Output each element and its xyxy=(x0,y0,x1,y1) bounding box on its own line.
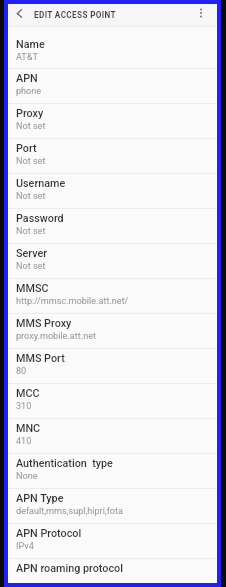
button[interactable]: APN roaming protocol xyxy=(8,559,217,583)
staticText: EDIT ACCESS POINT xyxy=(34,10,116,20)
staticText: Password xyxy=(16,212,64,225)
staticText: IPv4 xyxy=(16,541,34,552)
staticText: Not set xyxy=(16,191,46,202)
staticText: Username xyxy=(16,177,66,190)
button[interactable]: Navigate up xyxy=(8,4,31,22)
button[interactable]: MMS Port xyxy=(8,349,217,384)
staticText: Authentication type xyxy=(16,457,113,470)
button[interactable]: Port xyxy=(8,139,217,174)
staticText: http://mmsc.mobile.att.net/ xyxy=(16,296,129,307)
staticText: Not set xyxy=(16,156,46,167)
button[interactable]: Authentication type xyxy=(8,454,217,489)
staticText: Not set xyxy=(16,261,46,272)
button[interactable]: Username xyxy=(8,174,217,209)
staticText: default,mms,supl,hipri,fota xyxy=(16,506,123,517)
staticText: Port xyxy=(16,142,37,155)
staticText: MNC xyxy=(16,422,41,435)
staticText: Server xyxy=(16,247,48,260)
button[interactable]: MNC xyxy=(8,419,217,454)
button[interactable]: APN Type xyxy=(8,489,217,524)
staticText: MMSC xyxy=(16,282,49,295)
staticText: Proxy xyxy=(16,107,44,120)
staticText: 80 xyxy=(16,366,27,377)
staticText: Not set xyxy=(16,226,46,237)
button[interactable]: MCC xyxy=(8,384,217,419)
button[interactable]: Name xyxy=(8,35,217,69)
button[interactable]: Proxy xyxy=(8,104,217,139)
staticText: APN roaming protocol xyxy=(16,562,123,575)
button[interactable]: Password xyxy=(8,209,217,244)
staticText: Not set xyxy=(16,121,46,132)
staticText: Name xyxy=(16,38,45,51)
button[interactable]: MMS Proxy xyxy=(8,314,217,349)
staticText: AT&T xyxy=(16,52,38,63)
staticText: proxy.mobile.att.net xyxy=(16,331,96,342)
staticText: MMS Port xyxy=(16,352,65,365)
button[interactable]: Server xyxy=(8,244,217,279)
staticText: 410 xyxy=(16,436,32,447)
staticText: 310 xyxy=(16,401,32,412)
button[interactable]: MMSC xyxy=(8,279,217,314)
staticText: APN Type xyxy=(16,492,64,505)
staticText: phone xyxy=(16,86,42,97)
button[interactable]: APN Protocol xyxy=(8,524,217,559)
staticText: MCC xyxy=(16,387,40,400)
button[interactable]: APN xyxy=(8,69,217,104)
staticText: None xyxy=(16,471,38,482)
button[interactable]: More options xyxy=(185,4,217,22)
staticText: MMS Proxy xyxy=(16,317,72,330)
staticText: APN xyxy=(16,72,38,85)
staticText: APN Protocol xyxy=(16,527,82,540)
